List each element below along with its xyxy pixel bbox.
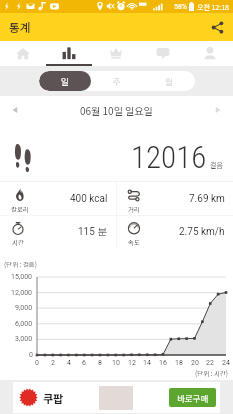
staticText: 통계 — [9, 19, 31, 36]
staticText: 속도 — [128, 237, 140, 246]
button[interactable]: 주 — [91, 71, 143, 91]
staticText: 걸음 — [210, 160, 223, 170]
button[interactable]: 속도 — [116, 215, 233, 248]
staticText: 400 kcal — [70, 193, 108, 205]
button[interactable]: Home — [0, 41, 46, 66]
staticText: 4 — [67, 359, 71, 367]
staticText: 오전 12:18 — [197, 2, 229, 12]
staticText: 16 — [159, 359, 167, 367]
staticText: 0 — [35, 359, 39, 367]
staticText: 20 — [191, 359, 199, 367]
button[interactable]: 바로구매 — [169, 388, 216, 407]
staticText: 7.69 km — [189, 193, 225, 205]
staticText: 14 — [143, 359, 151, 367]
staticText: 월 — [165, 75, 173, 87]
staticText: 18 — [175, 359, 183, 367]
button[interactable]: Next day — [203, 96, 233, 124]
staticText: 바로구매 — [177, 392, 209, 404]
staticText: 9,000 — [15, 304, 33, 312]
staticText: 쿠팝 — [43, 390, 64, 406]
staticText: 22 — [206, 359, 214, 367]
staticText: (단위 : 시간) — [195, 368, 229, 377]
staticText: 일 — [61, 75, 69, 87]
staticText: 6,000 — [15, 320, 33, 328]
button[interactable]: Chat — [139, 41, 186, 66]
staticText: 15,000 — [11, 273, 33, 281]
staticText: 2.75 km/h — [179, 226, 225, 238]
staticText: 6 — [82, 359, 86, 367]
button[interactable]: 시간 — [0, 215, 116, 248]
button[interactable]: 칼로리 — [0, 182, 116, 215]
staticText: 2 — [51, 359, 55, 367]
button[interactable]: Previous day — [0, 96, 30, 124]
button[interactable]: 일 — [39, 71, 91, 91]
staticText: 12,000 — [11, 289, 33, 297]
button[interactable]: 거리 — [116, 182, 233, 215]
staticText: 0 — [29, 351, 33, 359]
staticText: 거리 — [128, 204, 140, 213]
button[interactable]: 쿠팝 — [13, 382, 220, 413]
button[interactable]: 월 — [143, 71, 195, 91]
staticText: 시간 — [12, 237, 24, 246]
staticText: 24 — [222, 359, 230, 367]
button[interactable]: Share — [203, 13, 231, 41]
staticText: 주 — [113, 75, 121, 87]
staticText: (단위 : 걸음) — [4, 259, 38, 268]
button[interactable]: Ranking — [92, 41, 139, 66]
staticText: 12 — [128, 359, 136, 367]
staticText: 06월 10일 일요일 — [80, 103, 153, 117]
staticText: 12016 — [131, 139, 207, 175]
staticText: 칼로리 — [11, 204, 29, 213]
staticText: 3,000 — [15, 335, 33, 343]
staticText: 115 분 — [78, 225, 108, 238]
staticText: 10 — [112, 359, 120, 367]
button[interactable]: Statistics — [46, 41, 92, 66]
staticText: 8 — [98, 359, 102, 367]
staticText: 58% — [174, 3, 187, 11]
button[interactable]: Profile — [186, 41, 233, 66]
